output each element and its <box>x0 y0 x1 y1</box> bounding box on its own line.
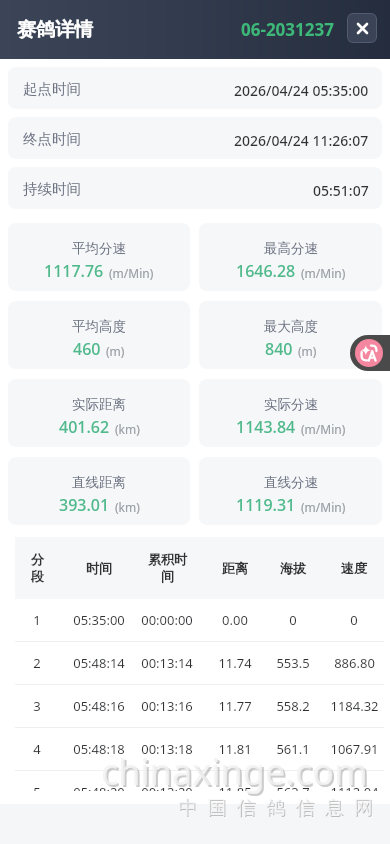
staticText: 1 <box>33 611 41 629</box>
staticText: 0 <box>289 611 297 629</box>
staticText: 1119.31 <box>236 494 296 516</box>
staticText: 1067.91 <box>330 740 379 758</box>
staticText: (m) <box>106 343 125 359</box>
staticText: 最大高度 <box>264 318 318 335</box>
staticText: 05:35:00 <box>73 611 125 629</box>
button[interactable]: Close <box>347 13 377 43</box>
staticText: 1646.28 <box>236 260 296 282</box>
staticText: 时间 <box>86 560 112 576</box>
staticText: 00:00:00 <box>141 611 193 629</box>
staticText: 886.80 <box>334 654 375 672</box>
staticText: (km) <box>115 421 140 437</box>
staticText: 平均高度 <box>72 318 126 335</box>
staticText: 00:13:20 <box>141 783 193 801</box>
staticText: 1112.04 <box>330 783 379 801</box>
staticText: 起点时间 <box>23 80 81 98</box>
staticText: 距离 <box>222 560 248 576</box>
staticText: 558.2 <box>276 697 310 715</box>
button[interactable]: 平均高度 <box>8 301 190 369</box>
staticText: (m/Min) <box>301 421 346 437</box>
staticText: 00:13:14 <box>141 654 193 672</box>
staticText: 401.62 <box>59 416 110 438</box>
staticText: 1184.32 <box>330 697 379 715</box>
staticText: (m/Min) <box>301 265 346 281</box>
staticText: 最高分速 <box>264 240 318 257</box>
staticText: 11.77 <box>218 697 252 715</box>
button[interactable]: 直线分速 <box>199 457 382 525</box>
button[interactable]: 最高分速 <box>199 223 382 291</box>
staticText: 速度 <box>341 560 367 576</box>
staticText: 5 <box>33 783 41 801</box>
button[interactable]: 平均分速 <box>8 223 190 291</box>
button[interactable]: 起点时间 <box>8 67 382 109</box>
staticText: 0 <box>350 611 358 629</box>
staticText: 11.74 <box>218 654 252 672</box>
staticText: 终点时间 <box>23 130 81 148</box>
staticText: 05:48:20 <box>73 783 125 801</box>
staticText: 持续时间 <box>23 180 81 198</box>
staticText: chinaxinge.com <box>101 747 368 796</box>
staticText: 11.85 <box>218 783 252 801</box>
staticText: 460 <box>73 338 101 360</box>
staticText: 累积时 间 <box>148 551 187 585</box>
staticText: 直线分速 <box>264 474 318 491</box>
staticText: (km) <box>115 499 140 515</box>
button[interactable]: Translate <box>350 335 390 371</box>
staticText: 分 段 <box>31 551 44 585</box>
staticText: 05:51:07 <box>313 181 369 200</box>
staticText: 05:48:16 <box>73 697 125 715</box>
staticText: 393.01 <box>59 494 110 516</box>
staticText: 2026/04/24 11:26:07 <box>234 131 369 150</box>
button[interactable]: 实际分速 <box>199 379 382 447</box>
staticText: 06-2031237 <box>241 18 334 41</box>
staticText: 561.1 <box>276 740 310 758</box>
staticText: 中国信鸽信息网 <box>179 797 385 821</box>
staticText: 05:48:18 <box>73 740 125 758</box>
button[interactable]: 直线距离 <box>8 457 190 525</box>
button[interactable]: 持续时间 <box>8 167 382 209</box>
staticText: (m/Min) <box>109 265 154 281</box>
staticText: (m) <box>298 343 317 359</box>
staticText: 00:13:18 <box>141 740 193 758</box>
staticText: 赛鸽详情 <box>17 18 93 42</box>
staticText: 05:48:14 <box>73 654 125 672</box>
staticText: 实际距离 <box>72 396 126 413</box>
staticText: (m/Min) <box>301 499 346 515</box>
staticText: 3 <box>33 697 41 715</box>
staticText: 00:13:16 <box>141 697 193 715</box>
staticText: 553.5 <box>276 654 310 672</box>
staticText: 1143.84 <box>236 416 296 438</box>
staticText: 平均分速 <box>72 240 126 257</box>
staticText: 海拔 <box>280 560 306 576</box>
staticText: 11.81 <box>218 740 252 758</box>
button[interactable]: 实际距离 <box>8 379 190 447</box>
staticText: 563.7 <box>276 783 310 801</box>
staticText: 0.00 <box>222 611 248 629</box>
staticText: 1117.76 <box>44 260 104 282</box>
staticText: 2 <box>33 654 41 672</box>
button[interactable]: 终点时间 <box>8 117 382 159</box>
button[interactable]: 最大高度 <box>199 301 382 369</box>
staticText: 4 <box>33 740 41 758</box>
staticText: 840 <box>265 338 293 360</box>
staticText: 2026/04/24 05:35:00 <box>234 81 369 100</box>
staticText: 中国信鸽信息网 <box>178 796 384 820</box>
staticText: 实际分速 <box>264 396 318 413</box>
staticText: 直线距离 <box>72 474 126 491</box>
staticText: chinaxinge.com <box>103 749 370 798</box>
